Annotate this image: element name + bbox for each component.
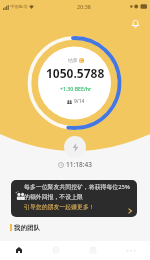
staticText: 引导您的朋友一起赚更多！ [24,203,95,210]
staticText: 1050.5788 [46,65,105,81]
button[interactable]: Home [0,241,37,260]
button[interactable]: Notifications [128,16,142,30]
staticText: +1.30 BEE/hr [60,85,92,92]
staticText: 每多一位聚友共同挖矿，将获得每位25%的额外回报，不设上限 [24,183,130,200]
staticText: 中国电信 [10,4,28,10]
staticText: 9/14 [74,98,85,105]
staticText: 结算 [68,57,78,63]
button[interactable]: Boost [64,136,86,158]
button[interactable]: 每多一位聚友共同挖矿，将获得每位25%的额外回报，不设上限 [11,180,137,217]
staticText: 11:18:43 [66,160,92,169]
staticText: 我的团队 [14,224,40,232]
staticText: 20:38 [77,3,91,10]
